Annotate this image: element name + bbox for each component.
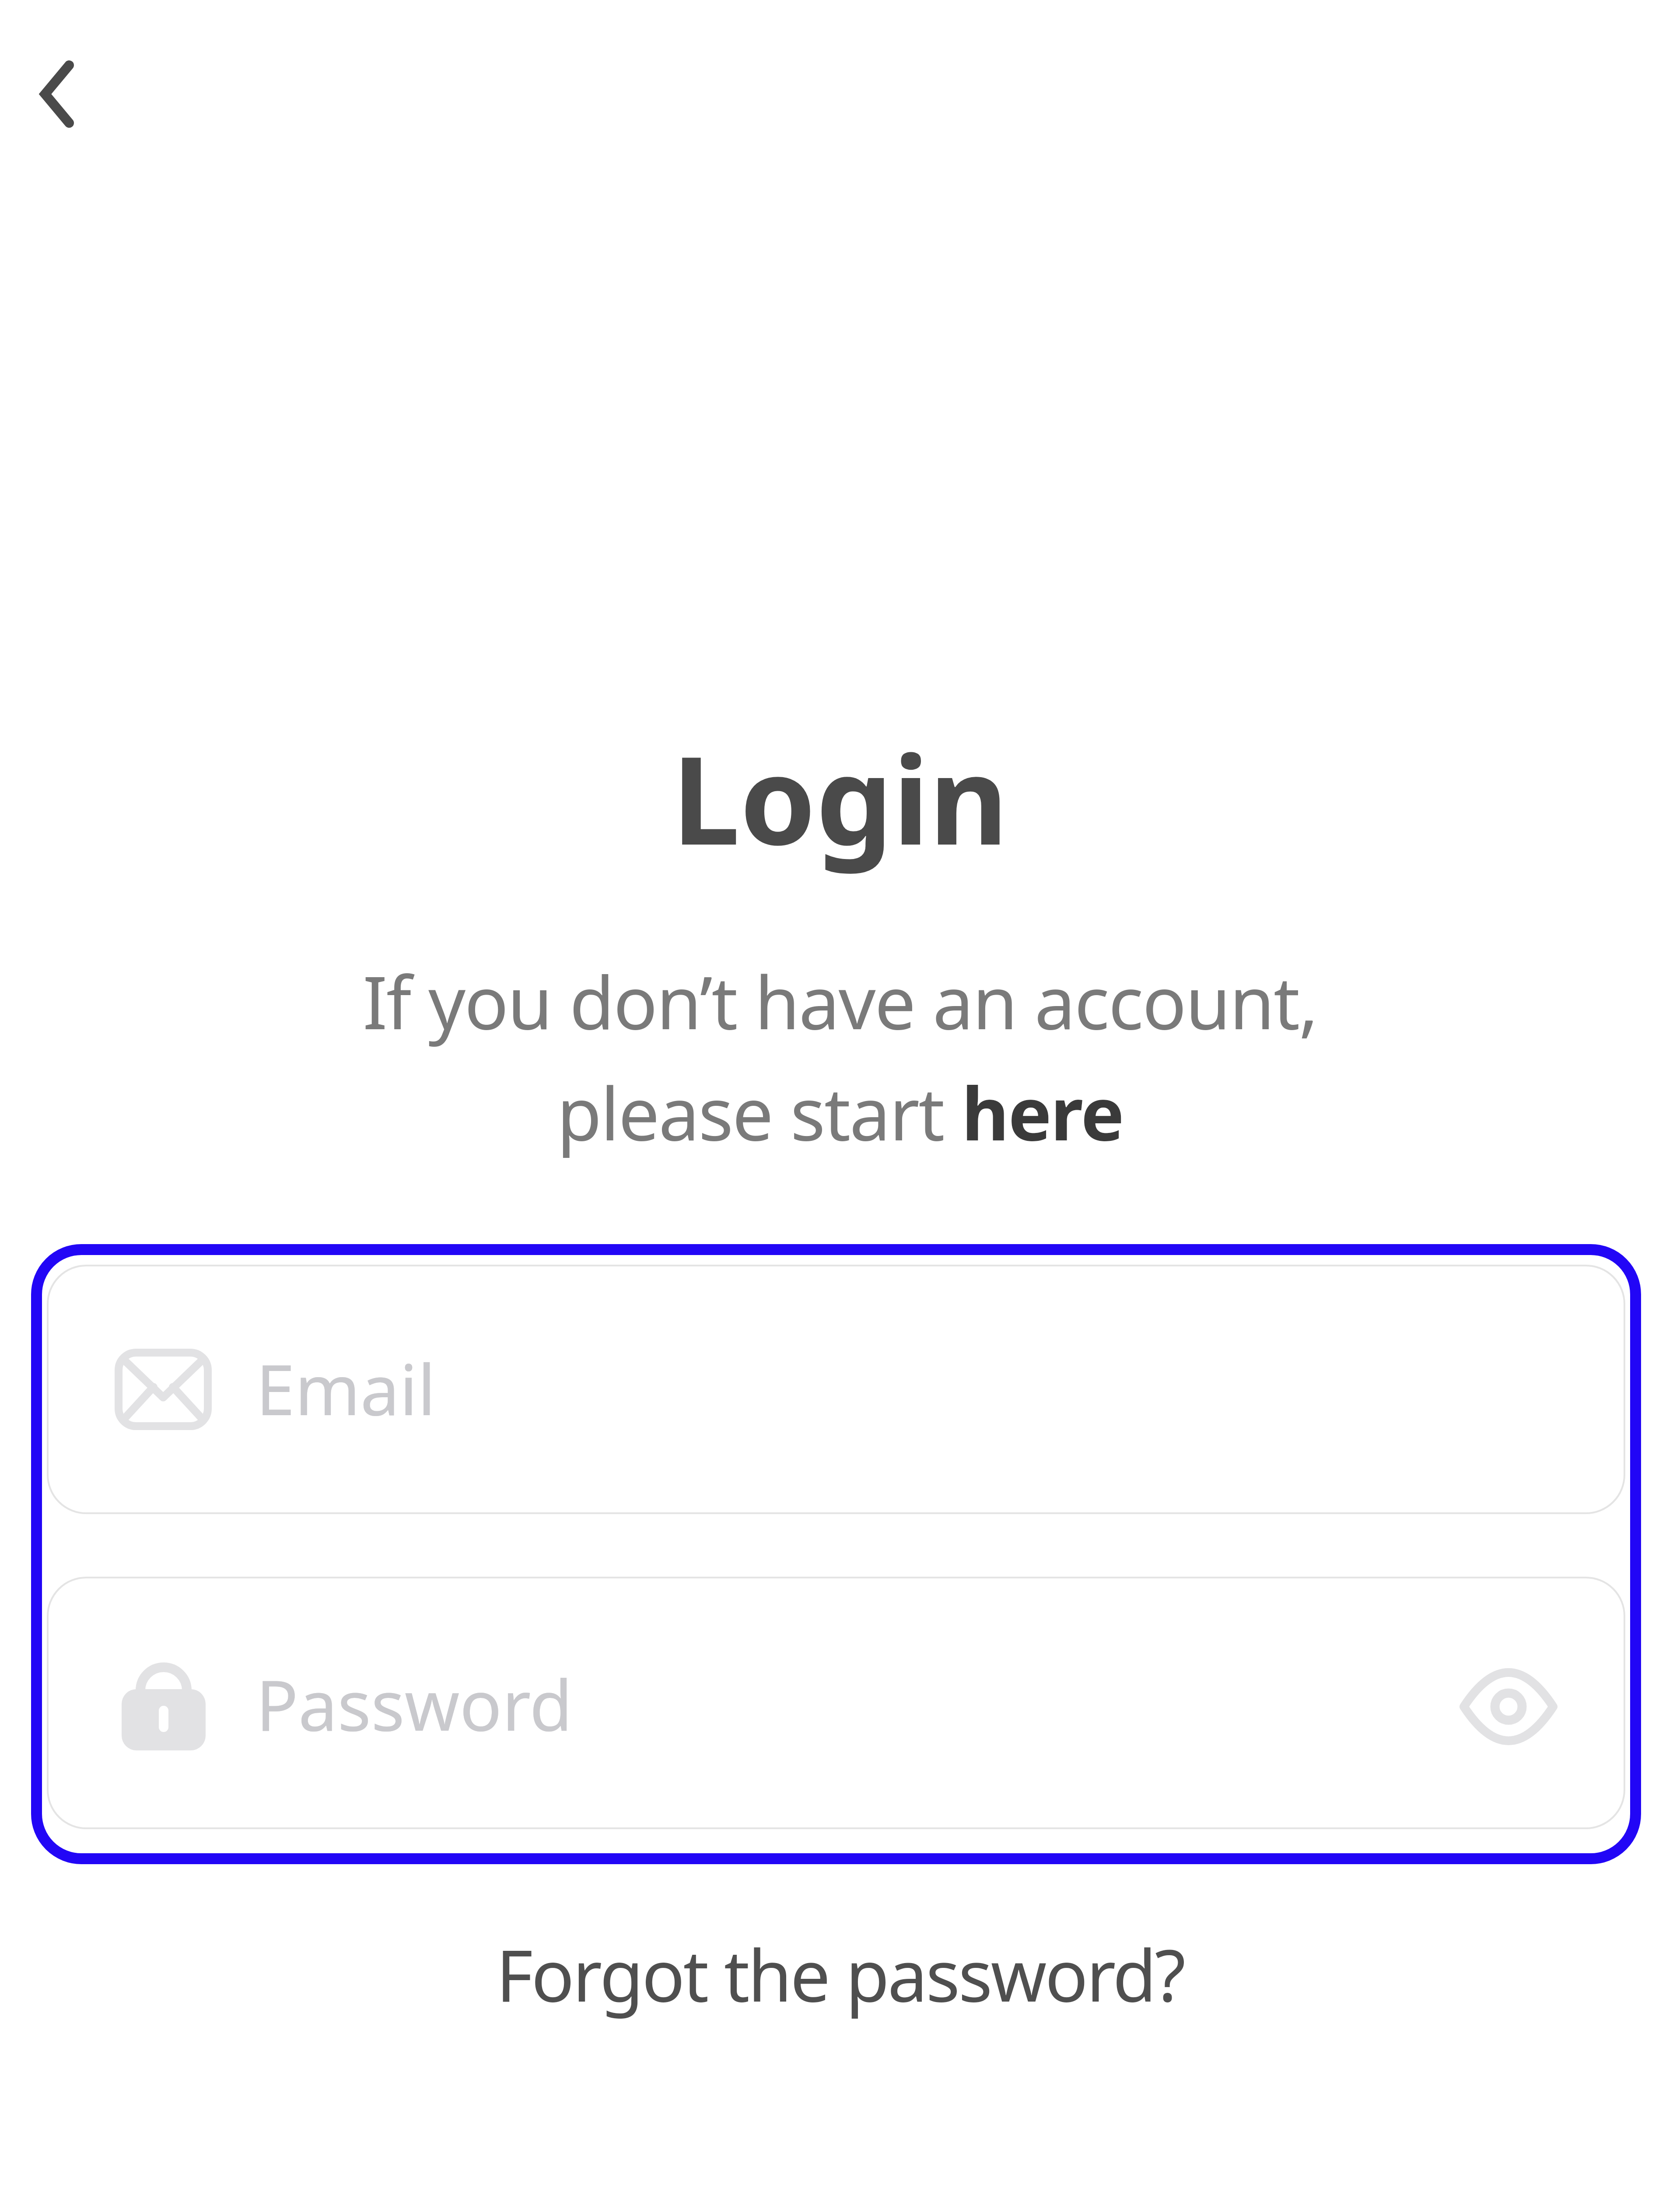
staticText: Login — [0, 715, 1680, 880]
button[interactable] — [1459, 1671, 1557, 1743]
button[interactable]: Email — [47, 1265, 1625, 1514]
staticText: Email — [256, 1340, 436, 1436]
staticText: If you don’t have an account, please sta… — [0, 951, 1680, 1162]
staticText: Password — [256, 1656, 573, 1751]
button[interactable] — [22, 44, 127, 149]
button[interactable]: Password — [47, 1577, 1625, 1829]
button[interactable]: Forgot the password? — [0, 1925, 1680, 2023]
